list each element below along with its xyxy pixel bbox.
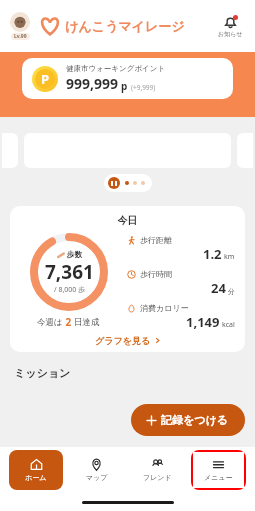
staticText: メニュー <box>204 473 233 482</box>
button[interactable]: 記録をつける <box>131 404 245 436</box>
staticText: kcal <box>222 320 235 330</box>
button[interactable]: メニュー <box>191 450 246 490</box>
staticText: 7,361 <box>45 259 94 285</box>
staticText: 日達成 <box>74 317 100 328</box>
staticText: P <box>41 70 50 88</box>
staticText: 健康市ウォーキングポイント <box>66 64 166 73</box>
staticText: 1.2 <box>203 245 222 263</box>
staticText: 2 <box>63 315 74 329</box>
staticText: 1,149 <box>186 313 220 331</box>
staticText: 999,999 <box>66 74 119 93</box>
staticText: グラフを見る <box>95 335 151 346</box>
staticText: ホーム <box>25 473 47 482</box>
staticText: けんこうマイレージ <box>65 18 185 34</box>
staticText: (+9,999) <box>131 83 156 92</box>
staticText: 消費カロリー <box>140 303 189 313</box>
staticText: フレンド <box>143 473 172 482</box>
staticText: ミッション <box>14 366 71 380</box>
staticText: p <box>121 79 128 93</box>
staticText: お知らせ <box>218 30 243 38</box>
button[interactable]: お知らせ <box>216 13 245 40</box>
staticText: 分 <box>228 287 235 296</box>
staticText: / 8,000 歩 <box>54 285 86 295</box>
button[interactable]: P <box>22 58 233 99</box>
button[interactable]: ホーム <box>9 450 63 490</box>
staticText: 今日 <box>10 214 245 227</box>
button[interactable]: グラフを見る <box>10 335 245 346</box>
staticText: 記録をつける <box>161 413 229 427</box>
staticText: 今週は <box>37 317 63 328</box>
staticText: 歩行距離 <box>140 235 172 245</box>
button[interactable]: 一時停止 <box>108 177 120 189</box>
staticText: 24 <box>211 279 226 297</box>
staticText: 歩行時間 <box>140 269 172 279</box>
staticText: km <box>224 252 235 262</box>
staticText: マップ <box>86 473 108 482</box>
staticText: Lv.99 <box>14 33 27 40</box>
button[interactable]: フレンド <box>130 450 185 490</box>
staticText: 歩数 <box>67 250 82 259</box>
button[interactable]: マップ <box>69 450 124 490</box>
